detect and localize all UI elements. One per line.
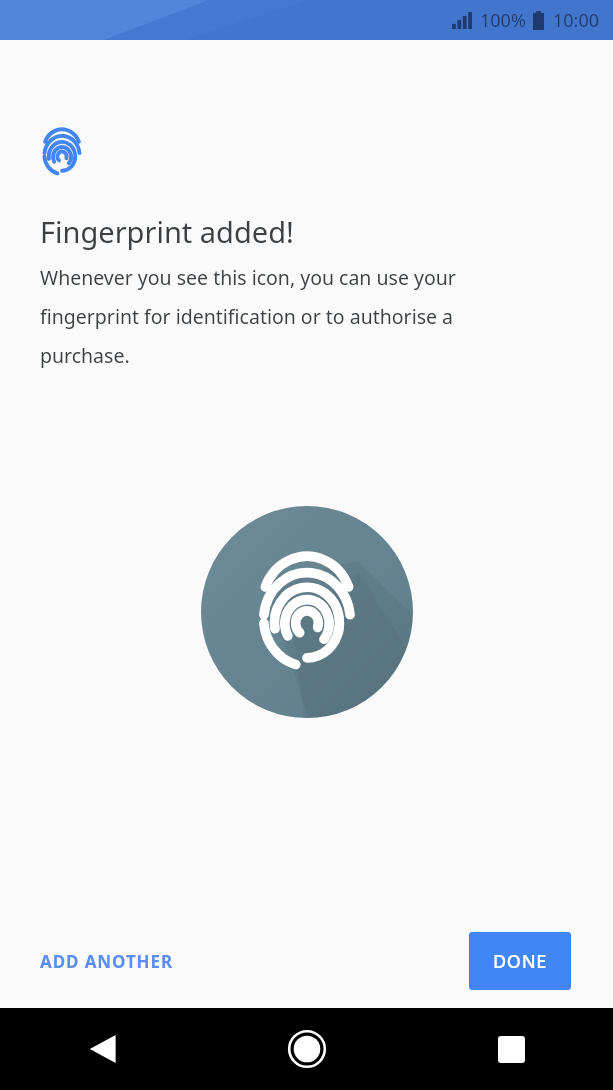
button[interactable]: Home bbox=[205, 1008, 409, 1090]
staticText: ADD ANOTHER bbox=[40, 950, 173, 973]
staticText: 10:00 bbox=[553, 8, 600, 33]
staticText: 100% bbox=[480, 8, 526, 33]
staticText: Whenever you see this icon, you can use … bbox=[40, 264, 543, 368]
staticText: DONE bbox=[493, 949, 548, 974]
button[interactable]: DONE bbox=[469, 932, 571, 990]
staticText: Fingerprint added! bbox=[40, 212, 294, 251]
button[interactable]: Recent apps bbox=[409, 1008, 613, 1090]
button[interactable]: Back bbox=[0, 1008, 205, 1090]
button[interactable]: ADD ANOTHER bbox=[28, 940, 185, 983]
